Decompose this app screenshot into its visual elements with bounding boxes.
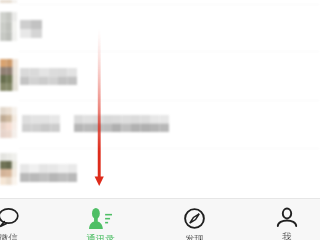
button[interactable]: Me <box>240 199 320 240</box>
button[interactable] <box>0 100 320 148</box>
staticText: 微信 <box>0 232 18 240</box>
staticText: 通讯录 <box>86 233 115 240</box>
staticText: 我 <box>282 231 292 240</box>
button[interactable] <box>0 148 320 196</box>
other: Me <box>277 208 297 227</box>
other: Chats <box>0 208 19 228</box>
button[interactable]: Discover <box>147 199 241 240</box>
button[interactable] <box>0 52 320 100</box>
button[interactable] <box>0 4 320 52</box>
button[interactable]: Chats <box>0 199 55 240</box>
staticText: 发现 <box>185 233 204 240</box>
other: Discover <box>184 208 205 229</box>
button[interactable]: Contacts <box>53 199 147 240</box>
other: Contacts <box>89 208 112 229</box>
